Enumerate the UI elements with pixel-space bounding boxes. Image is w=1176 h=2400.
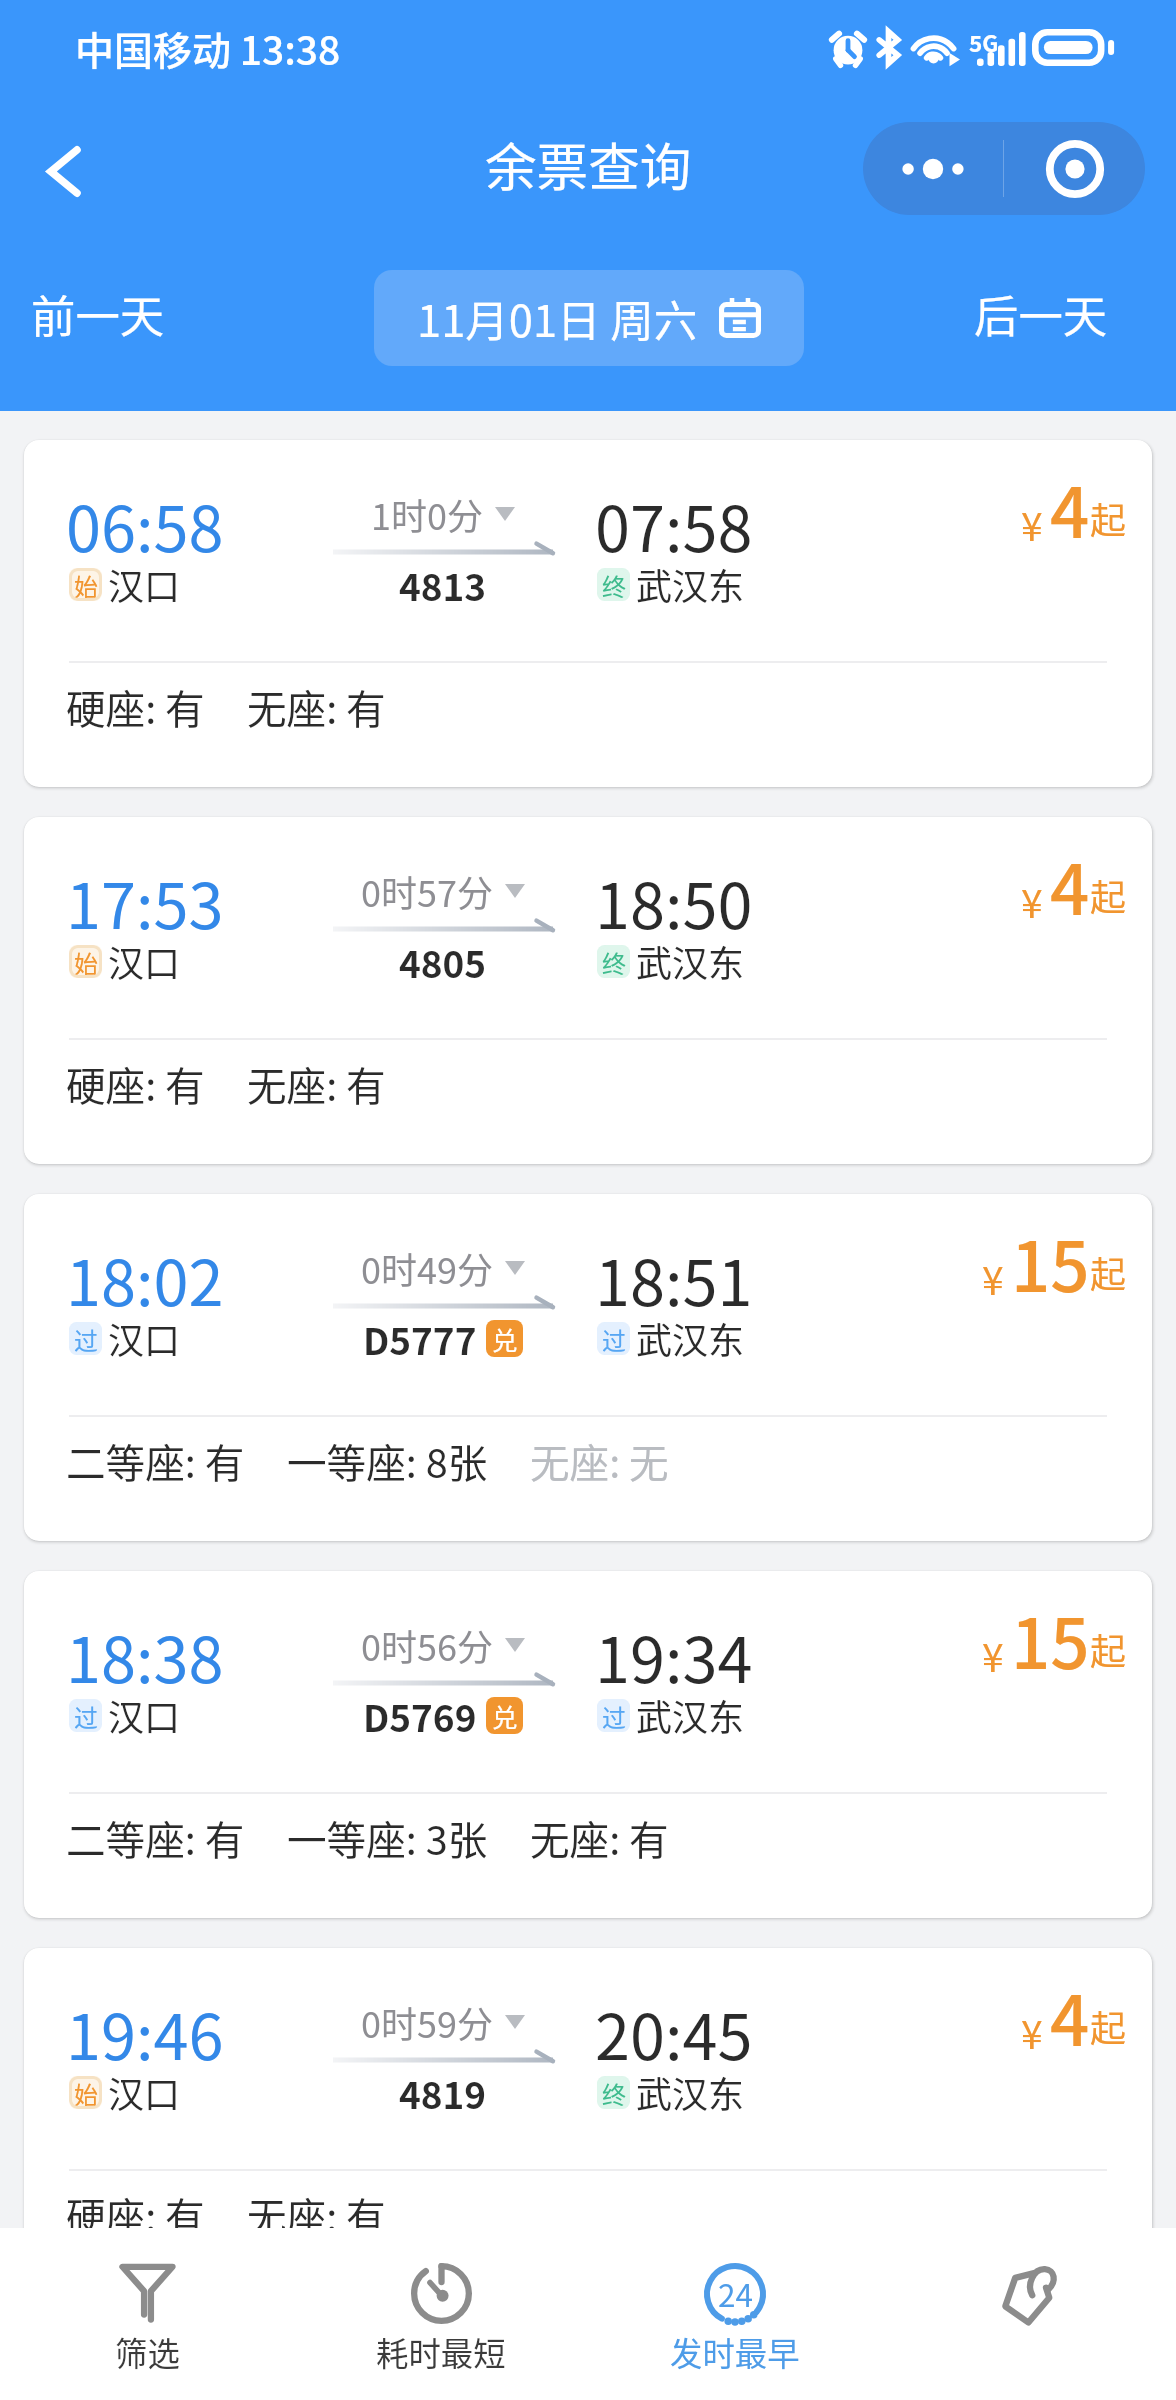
staticText: 硬座: 有 [66, 678, 205, 735]
staticText: 19:46 [66, 1987, 224, 2078]
button[interactable]: 17:53 [24, 817, 1152, 1164]
staticText: 武汉东 [636, 2066, 745, 2118]
button[interactable]: 24 [588, 2228, 882, 2400]
staticText: ¥ [1021, 873, 1043, 929]
staticText: 发时最早 [670, 2328, 800, 2375]
staticText: 硬座: 有 [66, 2186, 205, 2243]
staticText: 4 [1050, 458, 1090, 558]
staticText: 过 [602, 1699, 626, 1732]
staticText: 武汉东 [636, 935, 745, 987]
staticText: 20:45 [595, 1987, 753, 2078]
staticText: 武汉东 [636, 558, 745, 610]
staticText: 汉口 [108, 2066, 181, 2118]
staticText: 起 [1090, 869, 1127, 921]
staticText: 17:53 [66, 856, 224, 947]
button[interactable]: 价格标签 [882, 2228, 1176, 2400]
staticText: ¥ [982, 1250, 1004, 1306]
staticText: 终 [602, 2076, 626, 2109]
staticText: 18:50 [595, 856, 753, 947]
button[interactable]: 更多 [863, 122, 1003, 215]
button[interactable]: 前一天 [0, 215, 195, 411]
staticText: 二等座: 有 [66, 1809, 245, 1866]
staticText: 0时57分 [361, 865, 493, 917]
staticText: 5G [969, 26, 999, 59]
staticText: D5777 [363, 1312, 477, 1365]
staticText: 0时56分 [361, 1619, 493, 1671]
staticText: 汉口 [108, 935, 181, 987]
staticText: 后一天 [974, 281, 1108, 345]
staticText: 1时0分 [371, 488, 483, 540]
staticText: 前一天 [31, 281, 165, 345]
staticText: 筛选 [115, 2328, 180, 2375]
staticText: 武汉东 [636, 1312, 745, 1364]
staticText: 4819 [399, 2066, 487, 2119]
staticText: 4 [1050, 1966, 1090, 2066]
staticText: 起 [1090, 1623, 1127, 1675]
staticText: 06:58 [66, 479, 224, 570]
staticText: 一等座: 8张 [287, 1432, 488, 1489]
button[interactable]: 06:58 [24, 440, 1152, 787]
button[interactable]: 18:02 [24, 1194, 1152, 1541]
staticText: 过 [74, 1322, 98, 1355]
staticText: ¥ [1021, 496, 1043, 552]
button[interactable]: 18:38 [24, 1571, 1152, 1918]
button[interactable]: 11月01日 周六 [374, 270, 804, 366]
staticText: 汉口 [108, 1689, 181, 1741]
staticText: 0时49分 [361, 1242, 493, 1294]
staticText: 耗时最短 [376, 2328, 506, 2375]
staticText: 中国移动 13:38 [75, 20, 341, 76]
staticText: 始 [74, 945, 98, 978]
staticText: 武汉东 [636, 1689, 745, 1741]
staticText: 4 [1050, 835, 1090, 935]
staticText: 15 [1011, 1212, 1090, 1312]
staticText: 起 [1090, 1246, 1127, 1298]
staticText: 18:51 [595, 1233, 753, 1324]
staticText: 起 [1090, 492, 1127, 544]
button[interactable]: 筛选 [0, 2228, 294, 2400]
staticText: 24 [718, 2270, 753, 2316]
button[interactable]: 返回 [13, 120, 115, 222]
staticText: D5769 [363, 1689, 477, 1742]
staticText: 一等座: 3张 [287, 1809, 488, 1866]
button[interactable]: 19:46 [24, 1948, 1152, 2295]
staticText: 硬座: 有 [66, 1055, 205, 1112]
staticText: 0时59分 [361, 1996, 493, 2048]
staticText: 18:02 [66, 1233, 224, 1324]
staticText: ¥ [1021, 2004, 1043, 2060]
staticText: 过 [602, 1322, 626, 1355]
button[interactable]: 耗时最短 [294, 2228, 588, 2400]
staticText: 11月01日 周六 [417, 287, 698, 350]
staticText: 15 [1011, 1589, 1090, 1689]
staticText: 二等座: 有 [66, 1432, 245, 1489]
staticText: 无座: 有 [247, 678, 386, 735]
staticText: 无座: 有 [247, 2186, 386, 2243]
staticText: ¥ [982, 1627, 1004, 1683]
staticText: 始 [74, 568, 98, 601]
button[interactable]: 后一天 [943, 215, 1138, 411]
staticText: 余票查询 [485, 126, 692, 201]
button[interactable]: 关闭 [1004, 122, 1145, 215]
staticText: 汉口 [108, 1312, 181, 1364]
staticText: 无座: 有 [247, 1055, 386, 1112]
staticText: 始 [74, 2076, 98, 2109]
staticText: 无座: 无 [530, 1432, 669, 1489]
staticText: 过 [74, 1699, 98, 1732]
staticText: 兑 [492, 1320, 518, 1357]
staticText: 终 [602, 945, 626, 978]
staticText: 19:34 [595, 1610, 753, 1701]
staticText: 终 [602, 568, 626, 601]
staticText: 4813 [399, 558, 487, 611]
staticText: 18:38 [66, 1610, 224, 1701]
staticText: 兑 [492, 1697, 518, 1734]
staticText: 07:58 [595, 479, 753, 570]
staticText: 起 [1090, 2000, 1127, 2052]
staticText: 4805 [399, 935, 487, 988]
staticText: 汉口 [108, 558, 181, 610]
staticText: 无座: 有 [530, 1809, 669, 1866]
